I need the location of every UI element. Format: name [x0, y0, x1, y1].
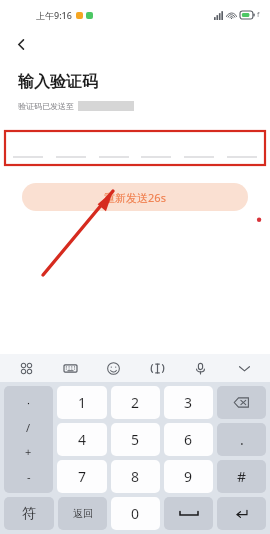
button[interactable]: .: [217, 423, 266, 456]
button[interactable]: Apps: [14, 356, 38, 380]
staticText: 重新发送26s: [104, 190, 166, 205]
staticText: #: [237, 467, 247, 486]
button[interactable]: 0: [111, 497, 160, 530]
button[interactable]: 返回: [58, 497, 107, 530]
staticText: ·: [27, 395, 30, 410]
button[interactable]: 3: [164, 386, 213, 419]
staticText: 验证码已发送至: [18, 101, 74, 111]
staticText: 7: [78, 467, 87, 486]
staticText: .: [240, 430, 244, 449]
button[interactable]: 4: [57, 423, 107, 456]
staticText: 8: [131, 467, 140, 486]
staticText: -: [27, 469, 31, 484]
button[interactable]: 6: [164, 423, 213, 456]
staticText: 3: [184, 393, 193, 412]
button[interactable]: 5: [111, 423, 160, 456]
staticText: 5: [131, 430, 140, 449]
button[interactable]: Back: [8, 31, 34, 57]
button[interactable]: Emoji: [101, 356, 125, 380]
button[interactable]: Keyboard: [58, 356, 82, 380]
button[interactable]: Voice input: [188, 356, 212, 380]
button[interactable]: #: [217, 460, 266, 493]
button[interactable]: 7: [57, 460, 107, 493]
button[interactable]: ·: [4, 386, 53, 493]
staticText: /: [26, 420, 31, 435]
button[interactable]: 8: [111, 460, 160, 493]
staticText: +: [25, 444, 32, 459]
button[interactable]: Backspace: [217, 386, 266, 419]
button[interactable]: 2: [111, 386, 160, 419]
staticText: 1: [78, 393, 87, 412]
staticText: 符: [22, 505, 36, 523]
button[interactable]: 符: [4, 497, 54, 530]
button[interactable]: Hide keyboard: [232, 356, 256, 380]
staticText: 返回: [73, 507, 93, 520]
button[interactable]: [13, 131, 257, 165]
staticText: 0: [131, 504, 140, 523]
button[interactable]: Enter: [217, 497, 266, 530]
staticText: 9: [184, 467, 193, 486]
button[interactable]: Assistant: [256, 200, 270, 226]
staticText: 上午9:16: [36, 9, 72, 21]
button[interactable]: 1: [57, 386, 107, 419]
button[interactable]: Space: [164, 497, 213, 530]
staticText: 6: [184, 430, 193, 449]
button[interactable]: Text edit: [145, 356, 169, 380]
button[interactable]: 9: [164, 460, 213, 493]
staticText: 4: [78, 430, 87, 449]
staticText: f: [257, 10, 260, 20]
staticText: 输入验证码: [18, 72, 98, 92]
button[interactable]: 重新发送26s: [22, 183, 248, 211]
staticText: 2: [131, 393, 140, 412]
